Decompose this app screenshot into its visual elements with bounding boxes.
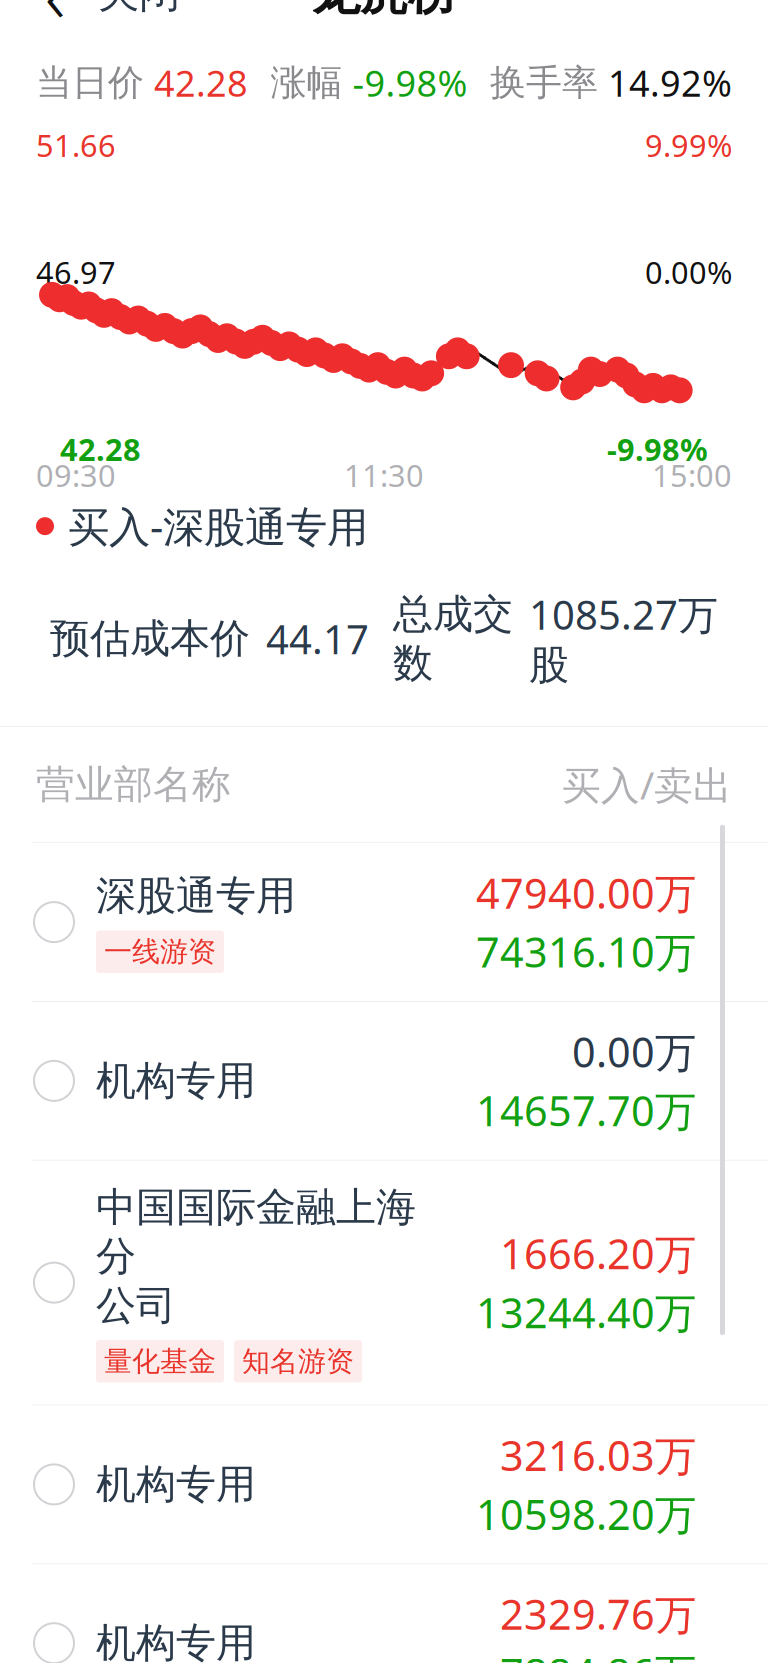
staticText: -9.98% (352, 59, 467, 107)
staticText: 0.00万 (572, 1024, 696, 1079)
staticText: 9.99% (645, 125, 732, 165)
button[interactable]: 中国国际金融上海分 公司 (0, 1161, 768, 1406)
staticText: -9.98% (607, 429, 708, 469)
staticText: 09:30 (36, 455, 116, 495)
button[interactable]: 关闭 (84, 0, 194, 22)
staticText: 预估成本价 (50, 614, 250, 663)
button[interactable]: 机构专用 (0, 1002, 768, 1161)
staticText: 3216.03万 (500, 1427, 696, 1482)
staticText: 74316.10万 (476, 924, 696, 979)
staticText: 一线游资 (104, 934, 216, 969)
button[interactable]: 机构专用 (0, 1564, 768, 1663)
staticText: 13244.40万 (476, 1285, 696, 1339)
staticText: 当日价 (36, 61, 144, 105)
staticText: 换手率 (490, 61, 598, 105)
staticText: 14.92% (608, 59, 732, 107)
staticText: 15:00 (652, 455, 732, 495)
staticText: 42.28 (154, 59, 248, 107)
staticText: ‹ (45, 0, 65, 44)
staticText: 关闭 (98, 0, 180, 18)
staticText: 10598.20万 (476, 1486, 696, 1541)
staticText: 买入-深股通专用 (68, 499, 368, 554)
staticText: 买入/卖出 (562, 759, 732, 810)
staticText: 1666.20万 (500, 1226, 696, 1281)
staticText: 44.17 (266, 612, 369, 665)
staticText: 7884.86万 (500, 1645, 696, 1663)
staticText: 机构专用 (96, 1056, 256, 1105)
staticText: 14657.70万 (476, 1083, 696, 1138)
button[interactable]: Back (26, 0, 84, 22)
staticText: 机构专用 (96, 1460, 256, 1509)
staticText: 11:30 (344, 455, 424, 495)
staticText: 0.00% (645, 252, 732, 292)
staticText: 量化基金 (104, 1344, 216, 1378)
button[interactable]: 深股通专用 (0, 843, 768, 1002)
staticText: 46.97 (36, 252, 116, 292)
staticText: 涨幅 (270, 61, 342, 105)
staticText: 龙虎榜 (312, 0, 456, 22)
staticText: 51.66 (36, 125, 116, 165)
staticText: 机构专用 (96, 1619, 256, 1663)
staticText: 营业部名称 (36, 761, 231, 808)
staticText: 中国国际金融上海分 公司 (96, 1183, 416, 1330)
staticText: 42.28 (60, 429, 141, 469)
staticText: 总成交数 (393, 590, 513, 688)
staticText: 1085.27万股 (529, 588, 718, 690)
staticText: 2329.76万 (500, 1586, 696, 1641)
staticText: 知名游资 (242, 1344, 354, 1378)
button[interactable]: 机构专用 (0, 1405, 768, 1564)
staticText: 47940.00万 (476, 865, 696, 920)
staticText: 深股通专用 (96, 871, 296, 920)
